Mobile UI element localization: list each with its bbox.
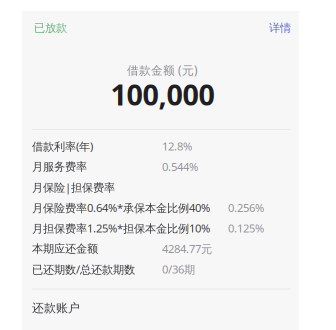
staticText: 月保险费率0.64%*承保本金比例40% bbox=[32, 200, 210, 215]
staticText: 借款金额 (元) bbox=[127, 62, 198, 78]
staticText: 0/36期 bbox=[162, 262, 195, 277]
staticText: 0.544% bbox=[162, 159, 198, 174]
staticText: 借款利率(年) bbox=[32, 139, 93, 154]
button[interactable]: 详情 bbox=[257, 13, 299, 43]
staticText: 12.8% bbox=[162, 139, 192, 154]
staticText: 详情 bbox=[269, 21, 291, 35]
staticText: 4284.77元 bbox=[162, 241, 212, 256]
staticText: 0.125% bbox=[228, 221, 264, 236]
staticText: 本期应还金额 bbox=[32, 242, 98, 256]
staticText: 月担保费率1.25%*担保本金比例10% bbox=[32, 221, 210, 236]
staticText: 还款账户 bbox=[32, 300, 80, 315]
staticText: 已还期数/总还款期数 bbox=[32, 262, 135, 277]
staticText: 100,000 bbox=[110, 75, 214, 114]
staticText: 0.256% bbox=[228, 200, 264, 215]
staticText: 已放款 bbox=[34, 21, 67, 35]
staticText: 月保险|担保费率 bbox=[32, 180, 115, 195]
staticText: 月服务费率 bbox=[32, 160, 87, 174]
button[interactable]: 还款账户 bbox=[22, 289, 299, 326]
